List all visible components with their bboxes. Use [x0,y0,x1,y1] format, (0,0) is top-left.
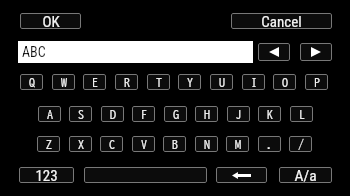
staticText: S [78,108,84,120]
button[interactable]: Space [84,167,207,183]
staticText: L [299,108,305,120]
button[interactable]: B [163,136,186,152]
staticText: E [92,76,98,88]
button[interactable]: W [52,74,75,90]
button[interactable]: H [195,106,218,122]
staticText: Q [29,76,35,88]
staticText: . [267,138,273,150]
button[interactable]: S [69,106,92,122]
button[interactable]: R [115,74,138,90]
button[interactable]: G [164,106,187,122]
staticText: / [298,138,304,150]
staticText: U [219,76,225,88]
button[interactable]: J [227,106,250,122]
staticText: R [124,76,130,88]
button[interactable]: P [305,74,328,90]
staticText: I [251,76,257,88]
staticText: A [47,108,53,120]
button[interactable]: Y [178,74,201,90]
button[interactable]: Move cursor left [258,43,290,61]
button[interactable]: A/a [279,167,332,183]
button[interactable]: N [195,136,218,152]
button[interactable]: Backspace [216,167,267,183]
button[interactable]: C [100,136,123,152]
button[interactable]: 123 [19,167,74,183]
staticText: O [282,76,288,88]
staticText: 123 [35,167,58,183]
button[interactable]: U [210,74,233,90]
button[interactable]: / [289,136,312,152]
button[interactable]: L [290,106,313,122]
button[interactable]: M [226,136,249,152]
staticText: OK [42,13,60,29]
button[interactable]: ABC [18,41,253,63]
staticText: M [235,138,241,150]
button[interactable]: OK [20,13,81,29]
staticText: C [109,138,115,150]
staticText: Z [46,138,52,150]
button[interactable]: I [242,74,265,90]
staticText: N [204,138,210,150]
button[interactable]: Cancel [231,13,332,29]
staticText: W [61,76,67,88]
staticText: F [141,108,147,120]
staticText: K [267,108,273,120]
staticText: ABC [22,44,46,60]
staticText: V [141,138,147,150]
button[interactable]: E [83,74,106,90]
button[interactable]: D [101,106,124,122]
button[interactable]: Q [20,74,43,90]
staticText: B [172,138,178,150]
button[interactable]: X [69,136,92,152]
staticText: T [156,76,162,88]
button[interactable]: O [273,74,296,90]
button[interactable]: Z [37,136,60,152]
staticText: A/a [294,167,317,183]
staticText: X [78,138,84,150]
staticText: D [110,108,116,120]
button[interactable]: T [147,74,170,90]
button[interactable]: F [132,106,155,122]
button[interactable]: V [132,136,155,152]
staticText: G [173,108,179,120]
staticText: Y [187,76,193,88]
staticText: P [314,76,320,88]
button[interactable]: Move cursor right [300,43,332,61]
button[interactable]: . [258,136,281,152]
staticText: Cancel [261,13,302,29]
button[interactable]: K [258,106,281,122]
staticText: H [204,108,210,120]
button[interactable]: A [38,106,61,122]
staticText: J [236,108,242,120]
